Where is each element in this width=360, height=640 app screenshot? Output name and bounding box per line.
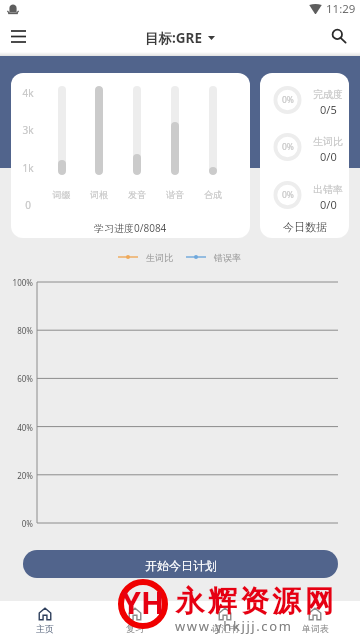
button[interactable]: 复习 xyxy=(90,601,180,640)
staticText: 0% xyxy=(3,518,33,529)
staticText: 主页 xyxy=(36,623,54,634)
staticText: 生词比 xyxy=(146,252,173,263)
staticText: 40% xyxy=(3,422,33,433)
staticText: 词缀 xyxy=(43,189,80,200)
button[interactable]: 词汇书 xyxy=(180,601,270,640)
staticText: 4k xyxy=(20,86,36,100)
staticText: 谐音 xyxy=(156,189,194,200)
staticText: 20% xyxy=(3,470,33,481)
staticText: 发音 xyxy=(118,189,156,200)
staticText: 复习 xyxy=(126,623,144,634)
staticText: 学习进度0/8084 xyxy=(94,221,167,235)
staticText: 出错率 xyxy=(313,183,343,196)
staticText: 永辉资源网 xyxy=(174,583,335,620)
staticText: 0 xyxy=(20,198,36,212)
button[interactable]: 单词表 xyxy=(270,601,360,640)
staticText: 目标:GRE xyxy=(145,29,202,47)
staticText: 生词比 xyxy=(313,135,343,148)
staticText: 60% xyxy=(3,373,33,384)
staticText: 0/5 xyxy=(320,102,337,116)
button[interactable]: Menu xyxy=(0,24,38,56)
staticText: 合成 xyxy=(194,189,232,200)
staticText: 词根 xyxy=(80,189,118,200)
staticText: YH xyxy=(120,581,166,623)
staticText: 开始今日计划 xyxy=(145,558,217,573)
staticText: 1k xyxy=(20,161,36,175)
staticText: 0% xyxy=(282,94,294,106)
staticText: 单词表 xyxy=(302,623,329,634)
staticText: 80% xyxy=(3,325,33,336)
staticText: www.yhkjjj.com xyxy=(175,617,293,635)
staticText: 100% xyxy=(3,277,33,288)
staticText: 错误率 xyxy=(214,252,241,263)
staticText: 词汇书 xyxy=(212,623,239,634)
button[interactable]: 主页 xyxy=(0,601,90,640)
staticText: 0/0 xyxy=(320,197,337,211)
staticText: 0% xyxy=(282,141,294,153)
staticText: 完成度 xyxy=(313,88,343,101)
staticText: 今日数据 xyxy=(283,220,327,234)
button[interactable]: 开始今日计划 xyxy=(23,550,338,578)
staticText: 0% xyxy=(282,189,294,201)
staticText: 11:29 xyxy=(326,1,356,17)
staticText: 0/0 xyxy=(320,149,337,163)
staticText: 3k xyxy=(20,123,36,137)
button[interactable]: Search xyxy=(322,24,360,56)
